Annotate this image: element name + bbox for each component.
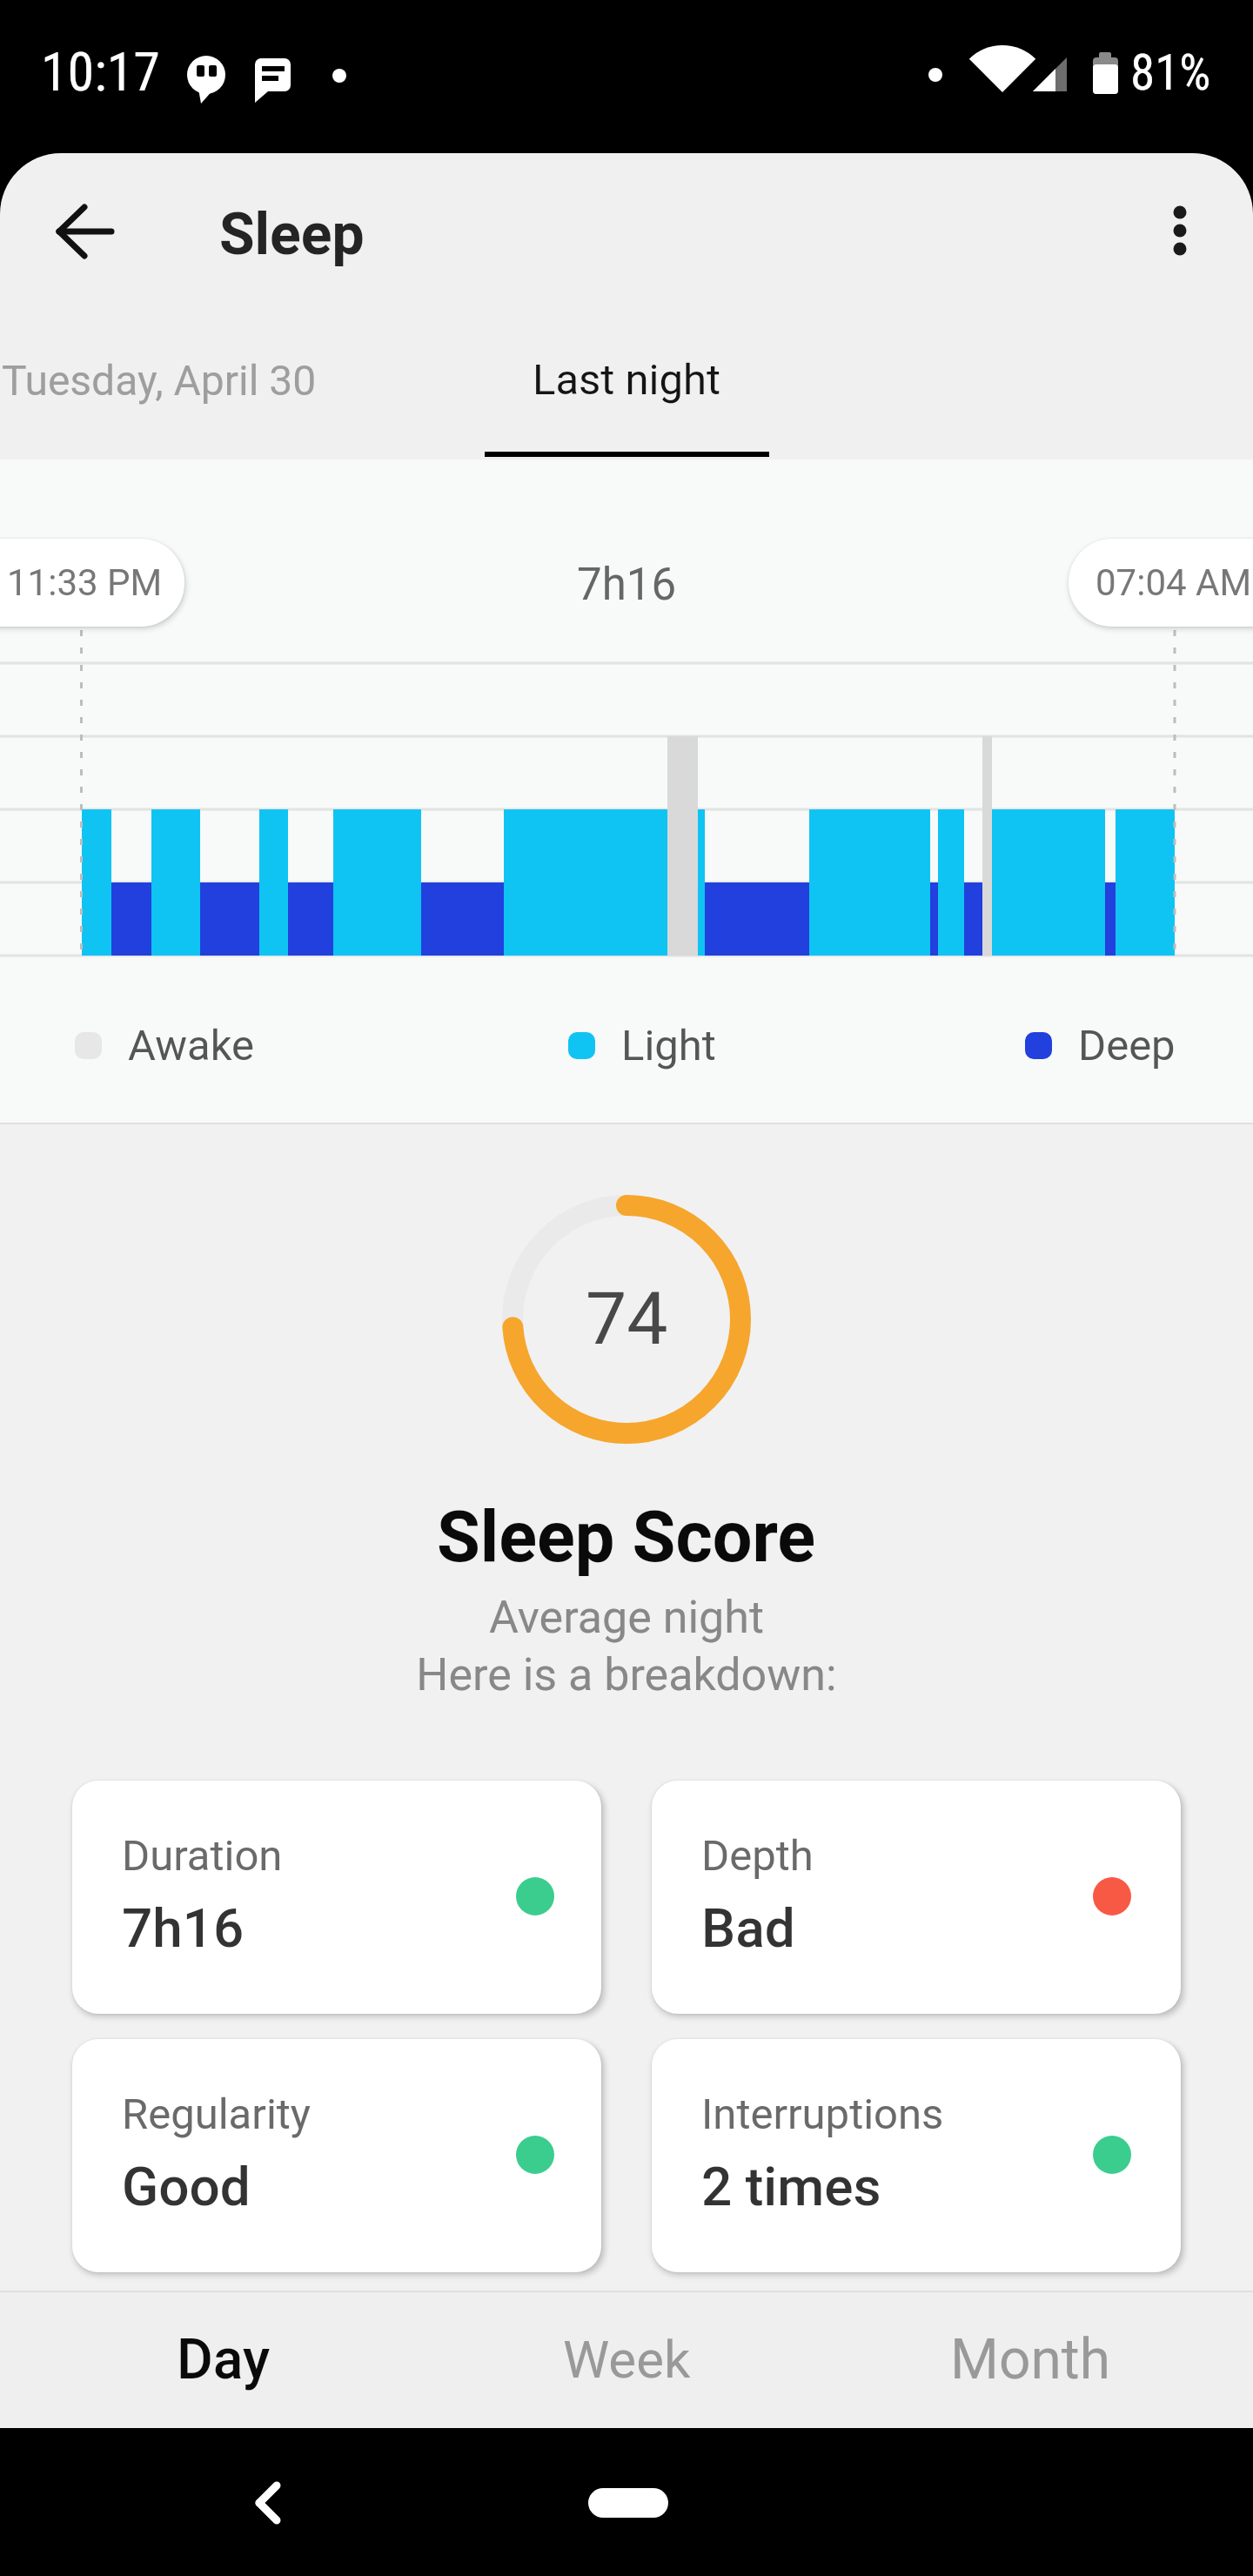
button[interactable] bbox=[1131, 162, 1229, 259]
staticText: Regularity bbox=[122, 2090, 312, 2139]
staticText: Good bbox=[122, 2155, 251, 2218]
staticText: 81% bbox=[1130, 44, 1211, 102]
staticText: Sleep Score bbox=[437, 1496, 816, 1579]
button[interactable]: Duration bbox=[72, 1781, 601, 2014]
button[interactable]: Regularity bbox=[72, 2039, 601, 2272]
staticText: 10:17 bbox=[41, 40, 160, 104]
staticText: 7h16 bbox=[577, 559, 677, 611]
staticText: 7h16 bbox=[122, 1896, 245, 1960]
button[interactable]: Tuesday, April 30 bbox=[2, 356, 317, 405]
staticText: Sleep bbox=[219, 201, 365, 268]
button[interactable]: Day bbox=[0, 2291, 418, 2428]
staticText: 11:33 PM bbox=[7, 561, 163, 604]
staticText: Last night bbox=[533, 355, 721, 405]
staticText: Depth bbox=[701, 1831, 814, 1881]
staticText: Average night Here is a breakdown: bbox=[416, 1591, 837, 1701]
staticText: Day bbox=[177, 2327, 271, 2392]
button[interactable]: Last night bbox=[533, 344, 721, 393]
button[interactable] bbox=[218, 2452, 318, 2553]
staticText: Week bbox=[563, 2329, 691, 2390]
staticText: Interruptions bbox=[701, 2090, 944, 2139]
button[interactable] bbox=[588, 2488, 668, 2518]
staticText: 2 times bbox=[701, 2155, 881, 2218]
button[interactable]: Depth bbox=[652, 1781, 1181, 2014]
staticText: Month bbox=[950, 2327, 1110, 2392]
button[interactable]: Interruptions bbox=[652, 2039, 1181, 2272]
button[interactable]: Month bbox=[835, 2291, 1253, 2428]
button[interactable]: Week bbox=[418, 2291, 835, 2428]
staticText: 07:04 AM bbox=[1096, 561, 1252, 604]
staticText: Bad bbox=[701, 1896, 795, 1960]
staticText: 74 bbox=[586, 1276, 668, 1361]
staticText: Deep bbox=[1078, 1021, 1176, 1070]
staticText: Awake bbox=[128, 1021, 254, 1070]
button[interactable] bbox=[35, 181, 135, 281]
staticText: Duration bbox=[122, 1831, 283, 1881]
staticText: Light bbox=[621, 1021, 716, 1070]
